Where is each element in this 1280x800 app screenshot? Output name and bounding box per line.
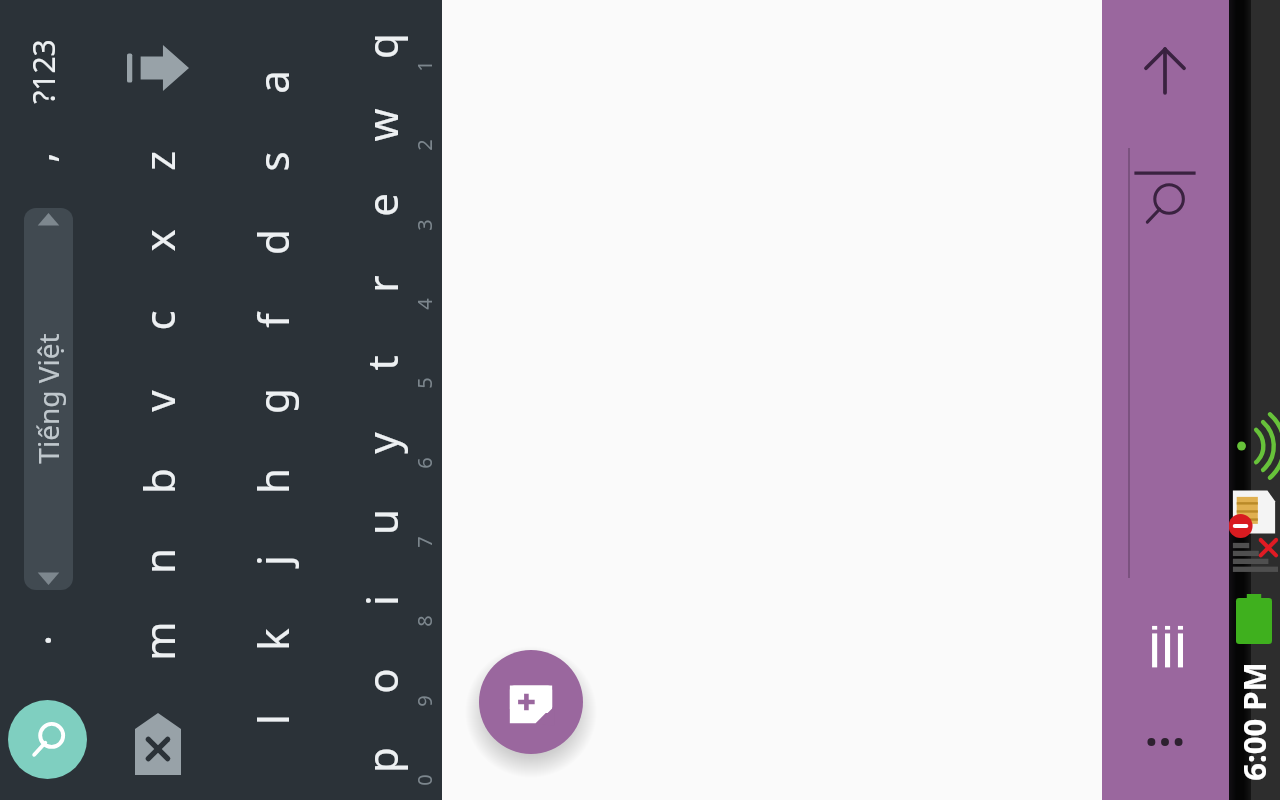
button[interactable]: [232, 122, 314, 202]
staticText: 6:00 PM: [1233, 662, 1275, 781]
button[interactable]: [345, 6, 435, 85]
staticText: y: [353, 432, 410, 454]
button[interactable]: [345, 720, 435, 799]
staticText: u: [353, 509, 410, 535]
button[interactable]: [0, 128, 82, 198]
button[interactable]: [0, 14, 82, 142]
staticText: e: [353, 193, 410, 217]
button[interactable]: [232, 42, 314, 122]
button[interactable]: [118, 441, 200, 521]
staticText: k: [244, 628, 301, 651]
staticText: 6: [411, 457, 438, 469]
staticText: j: [244, 555, 301, 566]
staticText: 4: [411, 298, 438, 310]
button[interactable]: [232, 202, 314, 282]
staticText: v: [130, 390, 187, 412]
staticText: f: [244, 313, 301, 328]
button[interactable]: [232, 600, 314, 680]
staticText: Tiếng Việt: [29, 333, 67, 464]
staticText: 7: [411, 536, 438, 548]
button[interactable]: [232, 521, 314, 601]
staticText: x: [130, 229, 187, 252]
staticText: z: [130, 151, 187, 171]
button[interactable]: [118, 601, 200, 681]
button[interactable]: [232, 361, 314, 441]
staticText: g: [244, 388, 301, 414]
staticText: r: [353, 275, 410, 293]
staticText: 9: [411, 695, 438, 707]
staticText: h: [244, 468, 301, 494]
staticText: q: [353, 33, 410, 59]
staticText: 8: [411, 615, 438, 627]
staticText: w: [353, 108, 410, 142]
staticText: m: [130, 621, 187, 661]
staticText: 0: [411, 774, 438, 786]
button[interactable]: [232, 281, 314, 361]
button[interactable]: [345, 165, 435, 244]
staticText: l: [244, 714, 301, 725]
button[interactable]: [345, 86, 435, 165]
button[interactable]: New note: [479, 650, 583, 754]
button[interactable]: Delete: [116, 694, 200, 794]
staticText: n: [130, 548, 187, 574]
staticText: s: [244, 151, 301, 172]
staticText: ,: [11, 152, 65, 163]
button[interactable]: [345, 641, 435, 720]
staticText: ?123: [23, 39, 64, 104]
button[interactable]: [232, 441, 314, 521]
button[interactable]: [345, 562, 435, 641]
staticText: c: [130, 310, 187, 331]
button[interactable]: Navigate up: [1131, 37, 1199, 105]
staticText: d: [244, 229, 301, 255]
button[interactable]: [345, 403, 435, 482]
button[interactable]: [118, 281, 200, 361]
button[interactable]: [118, 201, 200, 281]
staticText: p: [353, 747, 410, 773]
button[interactable]: Space, Tiếng Việt: [24, 208, 73, 590]
staticText: i: [353, 595, 410, 606]
button[interactable]: [345, 324, 435, 403]
button[interactable]: [118, 521, 200, 601]
button[interactable]: [118, 121, 200, 201]
staticText: o: [353, 668, 410, 694]
button[interactable]: Search: [8, 700, 87, 779]
staticText: a: [244, 70, 301, 94]
button[interactable]: [0, 602, 82, 672]
button[interactable]: Search: [1131, 165, 1199, 233]
staticText: b: [130, 468, 187, 494]
staticText: 5: [411, 377, 438, 389]
staticText: 2: [411, 139, 438, 151]
button[interactable]: [345, 244, 435, 323]
button[interactable]: [232, 680, 314, 760]
button[interactable]: View list: [1131, 613, 1199, 681]
staticText: 3: [411, 219, 438, 231]
button[interactable]: [118, 361, 200, 441]
staticText: .: [8, 635, 62, 646]
button[interactable]: Shift: [116, 16, 200, 120]
staticText: 1: [411, 60, 438, 72]
button[interactable]: [345, 482, 435, 561]
staticText: t: [353, 355, 410, 371]
button[interactable]: More options: [1131, 708, 1199, 776]
